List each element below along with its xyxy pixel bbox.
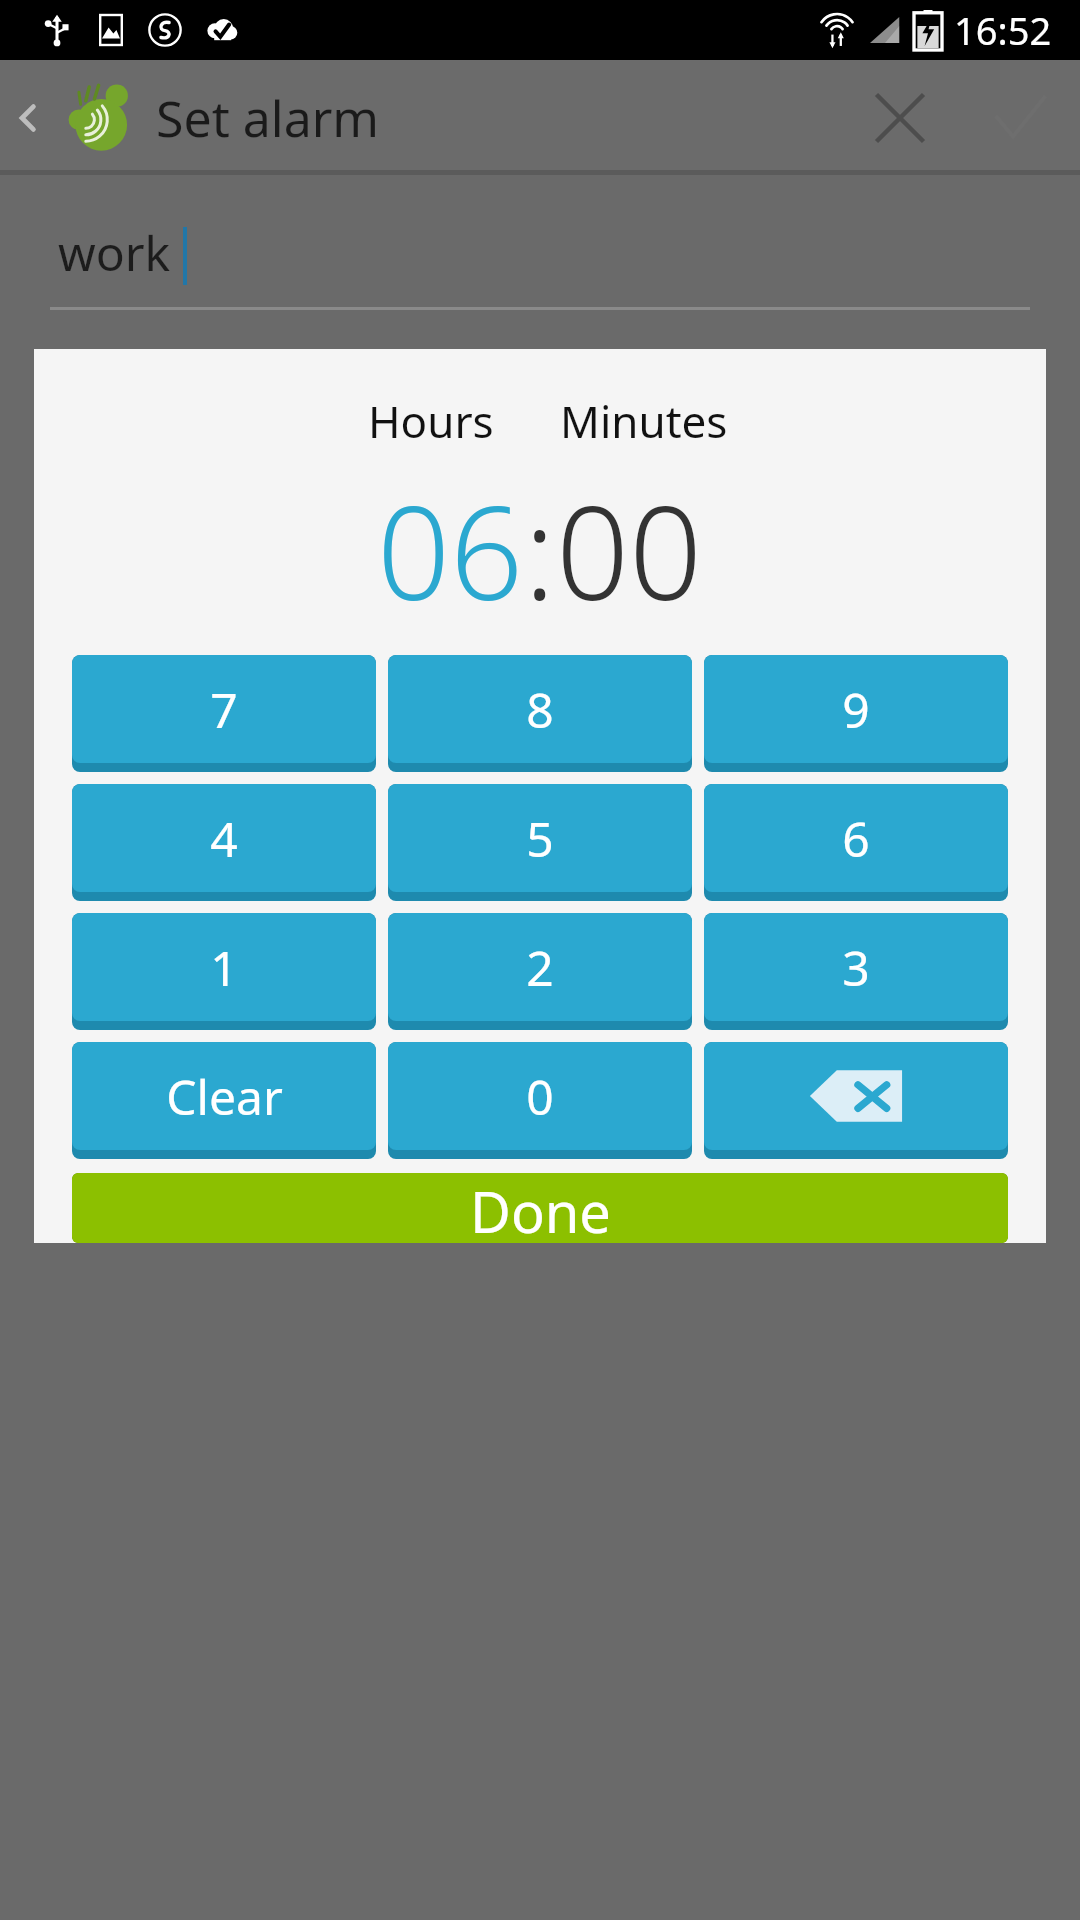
- staticText: work: [58, 220, 171, 285]
- staticText: 2: [526, 935, 554, 1000]
- button[interactable]: Cancel: [840, 60, 960, 175]
- staticText: 8: [526, 677, 554, 742]
- staticText: 06: [377, 463, 524, 637]
- staticText: 00: [556, 463, 703, 637]
- button[interactable]: Clear: [72, 1042, 376, 1159]
- staticText: Done: [470, 1173, 611, 1243]
- button[interactable]: Back: [0, 60, 56, 175]
- staticText: :: [524, 463, 556, 637]
- staticText: Minutes: [560, 391, 728, 451]
- button[interactable]: 6: [704, 784, 1008, 901]
- staticText: Set alarm: [156, 84, 380, 152]
- staticText: 4: [210, 806, 238, 871]
- button[interactable]: 0: [388, 1042, 692, 1159]
- button[interactable]: 3: [704, 913, 1008, 1030]
- staticText: 9: [842, 677, 870, 742]
- button[interactable]: Save: [960, 60, 1080, 175]
- staticText: 1: [210, 935, 238, 1000]
- staticText: Clear: [166, 1064, 283, 1129]
- button[interactable]: 4: [72, 784, 376, 901]
- button[interactable]: 5: [388, 784, 692, 901]
- button[interactable]: 7: [72, 655, 376, 772]
- staticText: 5: [526, 806, 554, 871]
- button[interactable]: Backspace: [704, 1042, 1008, 1159]
- button[interactable]: work: [58, 220, 1030, 285]
- staticText: 3: [842, 935, 870, 1000]
- staticText: 6: [842, 806, 870, 871]
- button[interactable]: 1: [72, 913, 376, 1030]
- staticText: Hours: [368, 391, 494, 451]
- staticText: 0: [526, 1064, 554, 1129]
- button[interactable]: Done: [72, 1173, 1008, 1243]
- button[interactable]: 8: [388, 655, 692, 772]
- button[interactable]: 9: [704, 655, 1008, 772]
- button[interactable]: 2: [388, 913, 692, 1030]
- staticText: 16:52: [954, 4, 1052, 56]
- staticText: 7: [210, 677, 238, 742]
